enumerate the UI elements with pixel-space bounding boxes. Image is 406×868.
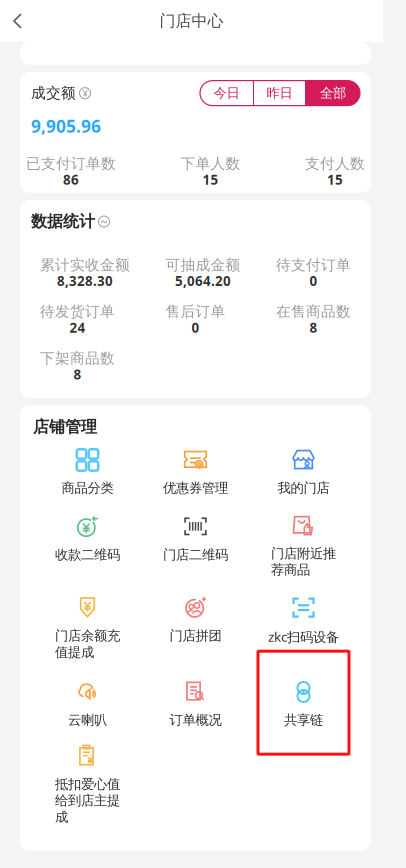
staticText: 门店二维码: [163, 547, 228, 563]
staticText: 待发货订单: [40, 303, 115, 321]
staticText: 门店拼团: [169, 628, 221, 644]
staticText: 收款二维码: [55, 547, 120, 563]
staticText: 我的门店: [277, 480, 329, 496]
staticText: 可抽成金额: [165, 256, 240, 274]
staticText: 门店余额充 值提成: [55, 628, 120, 660]
staticText: 门店附近推 荐商品: [271, 545, 336, 578]
button[interactable]: 抵扣爱心值 给到店主提 成: [33, 736, 141, 831]
staticText: 商品分类: [61, 480, 113, 496]
staticText: 售后订单: [165, 303, 225, 321]
staticText: 全部: [320, 85, 346, 101]
staticText: 8: [309, 319, 317, 336]
button[interactable]: 门店二维码: [141, 504, 249, 585]
staticText: 9,905.96: [31, 115, 101, 138]
button[interactable]: Back: [0, 0, 38, 42]
staticText: 门店中心: [159, 11, 223, 31]
button[interactable]: 今日: [200, 81, 253, 106]
button[interactable]: 云喇叭: [33, 670, 141, 736]
staticText: 优惠券管理: [163, 480, 228, 496]
staticText: 共享链: [284, 712, 323, 728]
staticText: 订单概况: [169, 712, 221, 728]
staticText: 5,064.20: [175, 272, 231, 290]
button[interactable]: zkc扫码设备: [249, 585, 357, 670]
button[interactable]: 我的门店: [249, 438, 357, 504]
staticText: 8,328.30: [57, 272, 113, 290]
staticText: 0: [309, 272, 317, 290]
staticText: 15: [327, 171, 343, 188]
staticText: 已支付订单数: [26, 155, 116, 173]
button[interactable]: 全部: [306, 81, 360, 106]
staticText: 在售商品数: [276, 303, 351, 321]
staticText: 待支付订单: [276, 256, 351, 274]
staticText: 下架商品数: [40, 349, 115, 367]
staticText: 下单人数: [180, 155, 240, 173]
staticText: 抵扣爱心值 给到店主提 成: [55, 776, 120, 825]
button[interactable]: 门店余额充 值提成: [33, 585, 141, 670]
staticText: 8: [73, 365, 81, 383]
button[interactable]: 商品分类: [33, 438, 141, 504]
button[interactable]: 门店拼团: [141, 585, 249, 670]
button[interactable]: 收款二维码: [33, 504, 141, 585]
staticText: 0: [191, 319, 199, 336]
staticText: 数据统计: [31, 212, 95, 231]
staticText: 24: [69, 319, 85, 336]
staticText: ¥: [82, 87, 87, 99]
staticText: 累计实收金额: [40, 256, 130, 274]
staticText: 昨日: [266, 85, 292, 101]
staticText: 成交额: [31, 84, 76, 102]
button[interactable]: 共享链: [249, 670, 357, 736]
staticText: 15: [202, 171, 218, 188]
button[interactable]: 门店附近推 荐商品: [249, 504, 357, 585]
button[interactable]: 昨日: [253, 81, 306, 106]
staticText: 86: [63, 171, 79, 188]
staticText: 云喇叭: [68, 712, 107, 728]
button[interactable]: 优惠券管理: [141, 438, 249, 504]
staticText: 支付人数: [305, 155, 365, 173]
staticText: 今日: [213, 85, 239, 101]
staticText: zkc扫码设备: [268, 628, 339, 645]
button[interactable]: 订单概况: [141, 670, 249, 736]
staticText: 店铺管理: [33, 417, 97, 437]
